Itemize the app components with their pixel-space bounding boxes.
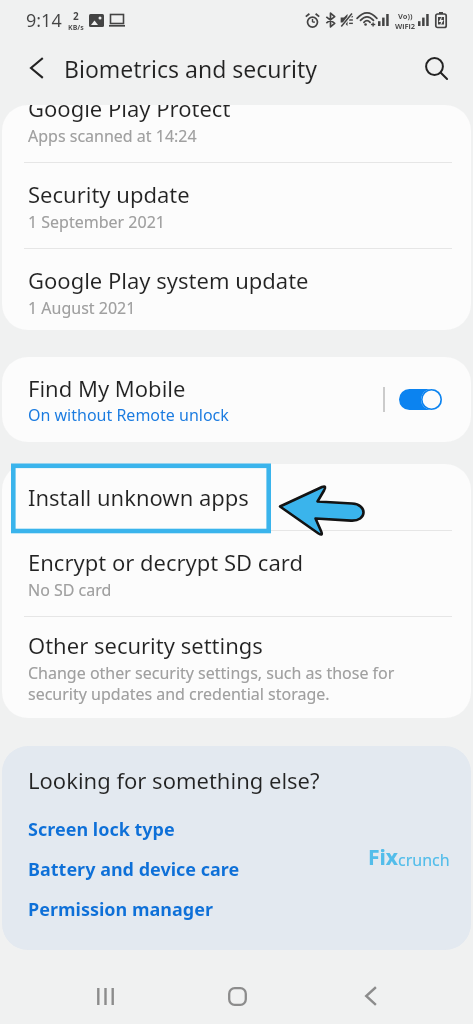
staticText: Looking for something else? — [28, 765, 320, 795]
button[interactable]: Security update — [2, 163, 471, 248]
button[interactable]: Encrypt or decrypt SD card — [2, 531, 471, 616]
staticText: On without Remote unlock — [28, 404, 229, 426]
button[interactable]: Battery and device care — [28, 857, 240, 882]
button[interactable]: Screen lock type — [28, 817, 175, 842]
button[interactable]: Install unknown apps — [2, 464, 471, 530]
staticText: WiFi2 — [395, 21, 416, 29]
staticText: Install unknown apps — [28, 482, 249, 512]
staticText: Change other security settings, such as … — [28, 662, 413, 705]
staticText: Vo)) — [398, 11, 413, 21]
button[interactable]: Back — [325, 962, 415, 1024]
staticText: 9:14 — [26, 8, 62, 33]
staticText: Apps scanned at 14:24 — [28, 125, 197, 147]
staticText: Google Play system update — [28, 265, 309, 295]
button[interactable]: Permission manager — [28, 897, 213, 922]
staticText: 2 — [73, 9, 79, 23]
button[interactable]: Home — [192, 962, 282, 1024]
staticText: Biometrics and security — [64, 53, 318, 84]
button[interactable]: Find My Mobile — [2, 357, 471, 442]
button[interactable]: Back — [18, 50, 54, 86]
button[interactable]: Find My Mobile toggle — [399, 389, 442, 410]
button[interactable]: Recent apps — [60, 962, 150, 1024]
button[interactable]: Google Play Protect — [2, 105, 471, 162]
button[interactable]: Other security settings — [2, 617, 471, 705]
staticText: No SD card — [28, 579, 112, 601]
staticText: KB/s — [68, 23, 84, 33]
button[interactable]: Google Play system update — [2, 249, 471, 330]
staticText: crunch — [398, 849, 450, 871]
staticText: Encrypt or decrypt SD card — [28, 547, 303, 577]
staticText: 1 September 2021 — [28, 211, 165, 233]
staticText: 1 August 2021 — [28, 297, 136, 319]
staticText: Find My Mobile — [28, 373, 186, 403]
staticText: Battery and device care — [28, 857, 240, 882]
staticText: Permission manager — [28, 897, 213, 922]
staticText: Screen lock type — [28, 817, 175, 842]
button[interactable]: Search — [415, 48, 455, 88]
staticText: Security update — [28, 179, 190, 209]
staticText: Google Play Protect — [28, 105, 231, 123]
staticText: Other security settings — [28, 630, 263, 660]
staticText: Fix — [368, 843, 398, 872]
